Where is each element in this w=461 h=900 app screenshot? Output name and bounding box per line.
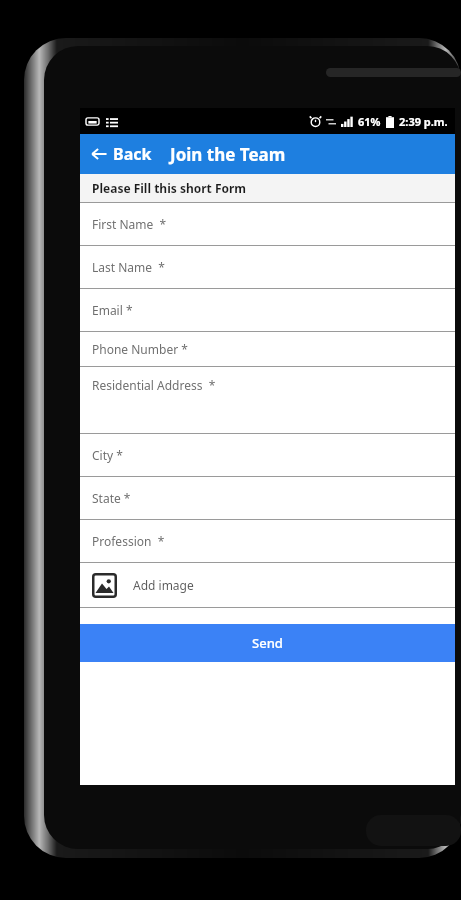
- staticText: City *: [92, 447, 123, 463]
- staticText: Join the Team: [170, 143, 286, 166]
- staticText: Residential Address *: [92, 377, 216, 393]
- staticText: Profession *: [92, 533, 165, 549]
- button[interactable]: Profession *: [80, 520, 455, 562]
- button[interactable]: Last Name *: [80, 246, 455, 288]
- staticText: State *: [92, 490, 131, 506]
- staticText: Send: [252, 634, 283, 652]
- button[interactable]: First Name *: [80, 203, 455, 245]
- button[interactable]: Residential Address *: [80, 367, 455, 433]
- staticText: Last Name *: [92, 259, 165, 275]
- button[interactable]: City *: [80, 434, 455, 476]
- button[interactable]: Add image: [80, 563, 455, 607]
- button[interactable]: Back: [80, 139, 158, 169]
- staticText: 2:39 p.m.: [399, 114, 448, 129]
- button[interactable]: Send: [80, 624, 455, 662]
- staticText: Phone Number *: [92, 341, 188, 357]
- button[interactable]: State *: [80, 477, 455, 519]
- button[interactable]: Email *: [80, 289, 455, 331]
- staticText: First Name *: [92, 216, 167, 232]
- staticText: Back: [113, 143, 152, 165]
- button[interactable]: Phone Number *: [80, 332, 455, 366]
- staticText: Add image: [133, 577, 194, 593]
- staticText: Email *: [92, 302, 133, 318]
- staticText: Please Fill this short Form: [92, 180, 247, 196]
- other: Add image: [92, 573, 117, 598]
- staticText: 61%: [358, 114, 381, 129]
